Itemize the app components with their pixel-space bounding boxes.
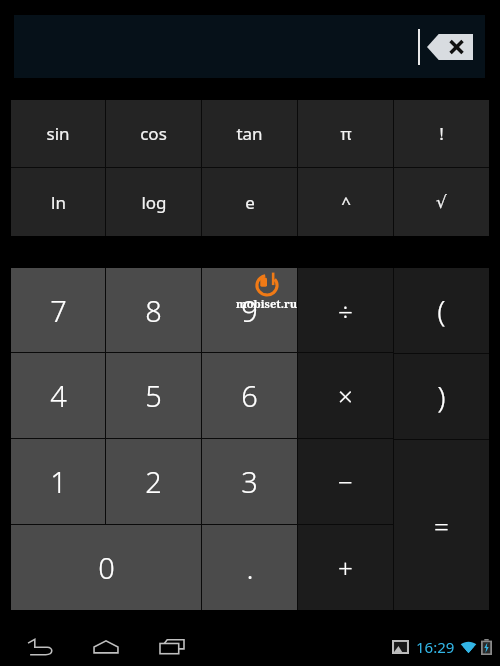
button[interactable]: 4 bbox=[11, 353, 105, 438]
button[interactable]: 6 bbox=[202, 353, 297, 438]
staticText: cos bbox=[140, 122, 167, 145]
button[interactable]: . bbox=[202, 525, 297, 610]
staticText: log bbox=[141, 191, 167, 214]
button[interactable]: 5 bbox=[106, 353, 201, 438]
staticText: ln bbox=[51, 191, 66, 214]
button[interactable]: 2 bbox=[106, 439, 201, 524]
staticText: 3 bbox=[241, 462, 258, 501]
button[interactable]: π bbox=[298, 100, 393, 167]
button[interactable]: 9 bbox=[202, 268, 297, 352]
staticText: 8 bbox=[145, 291, 162, 330]
button[interactable]: 8 bbox=[106, 268, 201, 352]
button[interactable]: Recent apps bbox=[150, 632, 194, 662]
button[interactable]: 7 bbox=[11, 268, 105, 352]
button[interactable]: ( bbox=[394, 268, 489, 353]
staticText: π bbox=[340, 122, 352, 145]
button[interactable]: − bbox=[298, 439, 393, 524]
staticText: e bbox=[245, 191, 255, 214]
button[interactable]: sin bbox=[11, 100, 105, 167]
staticText: ( bbox=[437, 290, 446, 331]
button[interactable]: ÷ bbox=[298, 268, 393, 352]
button[interactable]: ) bbox=[394, 354, 489, 439]
staticText: ) bbox=[437, 376, 446, 417]
button[interactable]: Backspace bbox=[427, 34, 473, 60]
button[interactable]: √ bbox=[394, 168, 489, 236]
staticText: . bbox=[246, 548, 254, 587]
button[interactable]: 1 bbox=[11, 439, 105, 524]
staticText: 16:29 bbox=[416, 637, 455, 657]
staticText: mobiset.ru bbox=[236, 296, 297, 311]
staticText: 6 bbox=[241, 376, 258, 415]
staticText: 1 bbox=[50, 462, 67, 501]
staticText: + bbox=[338, 550, 353, 585]
staticText: ^ bbox=[341, 191, 351, 214]
button[interactable]: tan bbox=[202, 100, 297, 167]
button[interactable]: 3 bbox=[202, 439, 297, 524]
button[interactable]: + bbox=[298, 525, 393, 610]
button[interactable]: × bbox=[298, 353, 393, 438]
staticText: 9 bbox=[241, 291, 258, 330]
staticText: 5 bbox=[145, 376, 162, 415]
button[interactable]: ^ bbox=[298, 168, 393, 236]
staticText: 2 bbox=[145, 462, 162, 501]
staticText: = bbox=[434, 508, 449, 543]
button[interactable]: cos bbox=[106, 100, 201, 167]
staticText: × bbox=[338, 378, 353, 413]
staticText: 7 bbox=[50, 291, 67, 330]
staticText: 0 bbox=[98, 548, 115, 587]
staticText: tan bbox=[236, 122, 263, 145]
staticText: 4 bbox=[50, 376, 67, 415]
staticText: √ bbox=[436, 192, 447, 212]
button[interactable]: Home bbox=[84, 632, 128, 662]
button[interactable]: log bbox=[106, 168, 201, 236]
staticText: ! bbox=[439, 122, 444, 145]
button[interactable]: = bbox=[394, 440, 489, 610]
staticText: − bbox=[338, 464, 353, 499]
button[interactable]: ln bbox=[11, 168, 105, 236]
staticText: sin bbox=[46, 122, 70, 145]
staticText: ÷ bbox=[338, 293, 353, 328]
button[interactable]: 0 bbox=[11, 525, 201, 610]
button[interactable]: Back bbox=[18, 632, 62, 662]
button[interactable]: e bbox=[202, 168, 297, 236]
button[interactable]: ! bbox=[394, 100, 489, 167]
